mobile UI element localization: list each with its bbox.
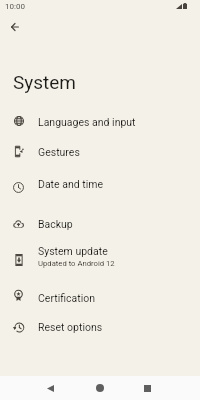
staticText: 10:00 <box>5 2 25 11</box>
button[interactable]: Back <box>37 376 63 400</box>
button[interactable]: Home <box>87 376 113 400</box>
staticText: Reset options <box>38 321 103 333</box>
button[interactable]: Recent apps <box>134 376 160 400</box>
staticText: Date and time <box>38 178 104 190</box>
staticText: Gestures <box>38 146 80 158</box>
button[interactable]: System update <box>0 236 200 274</box>
staticText: Certification <box>38 292 96 304</box>
button[interactable]: Gestures <box>0 137 200 167</box>
button[interactable]: Date and time <box>0 169 200 199</box>
staticText: Backup <box>38 218 73 230</box>
button[interactable]: Back <box>2 14 28 40</box>
button[interactable]: Certification <box>0 283 200 313</box>
staticText: Updated to Android 12 <box>38 259 115 268</box>
button[interactable]: Languages and input <box>0 107 200 137</box>
staticText: System <box>13 71 77 93</box>
button[interactable]: Reset options <box>0 312 200 342</box>
staticText: Languages and input <box>38 116 136 128</box>
button[interactable]: Backup <box>0 209 200 239</box>
staticText: System update <box>38 245 108 257</box>
